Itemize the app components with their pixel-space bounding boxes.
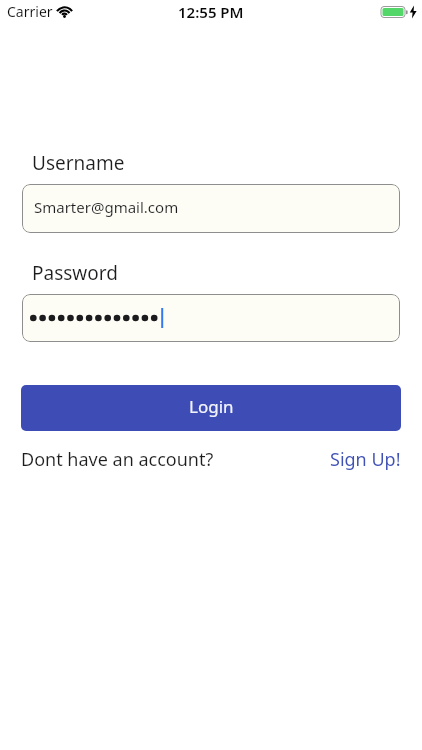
- button[interactable]: Sign Up!: [330, 447, 401, 472]
- staticText: Login: [189, 395, 234, 418]
- staticText: Password: [32, 260, 118, 286]
- staticText: Carrier: [7, 2, 53, 21]
- staticText: Sign Up!: [330, 447, 401, 472]
- button[interactable]: Login: [21, 385, 401, 431]
- staticText: Dont have an account?: [21, 447, 214, 472]
- button[interactable]: Smarter@gmail.com: [22, 184, 400, 233]
- staticText: 12:55 PM: [178, 2, 244, 22]
- button[interactable]: [22, 294, 400, 342]
- staticText: Smarter@gmail.com: [34, 197, 179, 217]
- staticText: Username: [32, 150, 125, 176]
